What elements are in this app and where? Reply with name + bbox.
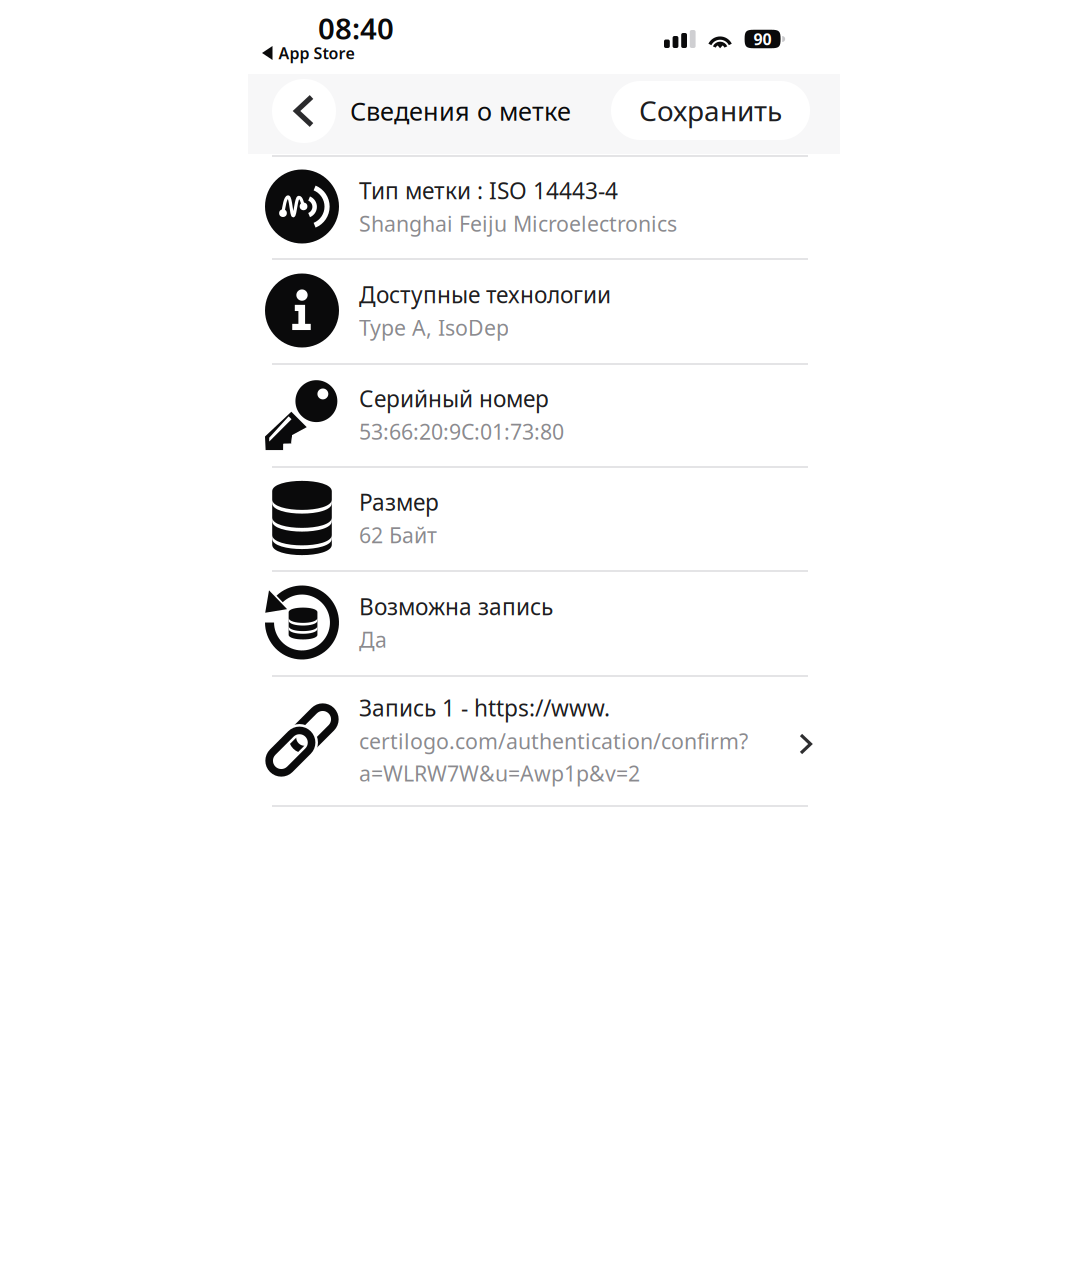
staticText: App Store [278, 42, 354, 64]
staticText: a=WLRW7W&u=Awp1p&v=2 [359, 759, 640, 787]
staticText: Сохранить [639, 92, 782, 129]
staticText: 90 [754, 28, 772, 50]
staticText: Тип метки : ISO 14443-4 [359, 175, 618, 205]
staticText: Type A, IsoDep [359, 313, 509, 342]
button[interactable]: Размер [272, 466, 808, 570]
staticText: certilogo.com/authentication/confirm? [359, 727, 748, 755]
button[interactable]: Доступные технологии [272, 258, 808, 363]
button[interactable]: Запись 1 - https://www. [272, 675, 808, 805]
staticText: 62 Байт [359, 521, 437, 549]
button[interactable]: Тип метки : ISO 14443-4 [272, 155, 808, 258]
staticText: Да [359, 625, 387, 654]
staticText: Shanghai Feiju Microelectronics [359, 209, 677, 238]
staticText: Серийный номер [359, 383, 549, 413]
button[interactable]: Back [272, 79, 336, 143]
staticText: 08:40 [318, 8, 394, 47]
button[interactable]: Возможна запись [272, 570, 808, 675]
staticText: Сведения о метке [350, 94, 571, 128]
button[interactable]: Сохранить [611, 81, 810, 140]
staticText: 53:66:20:9C:01:73:80 [359, 417, 564, 446]
button[interactable]: Серийный номер [272, 363, 808, 466]
staticText: Размер [359, 487, 439, 517]
staticText: Доступные технологии [359, 279, 611, 309]
staticText: Возможна запись [359, 591, 553, 621]
staticText: Запись 1 - https://www. [359, 693, 610, 723]
